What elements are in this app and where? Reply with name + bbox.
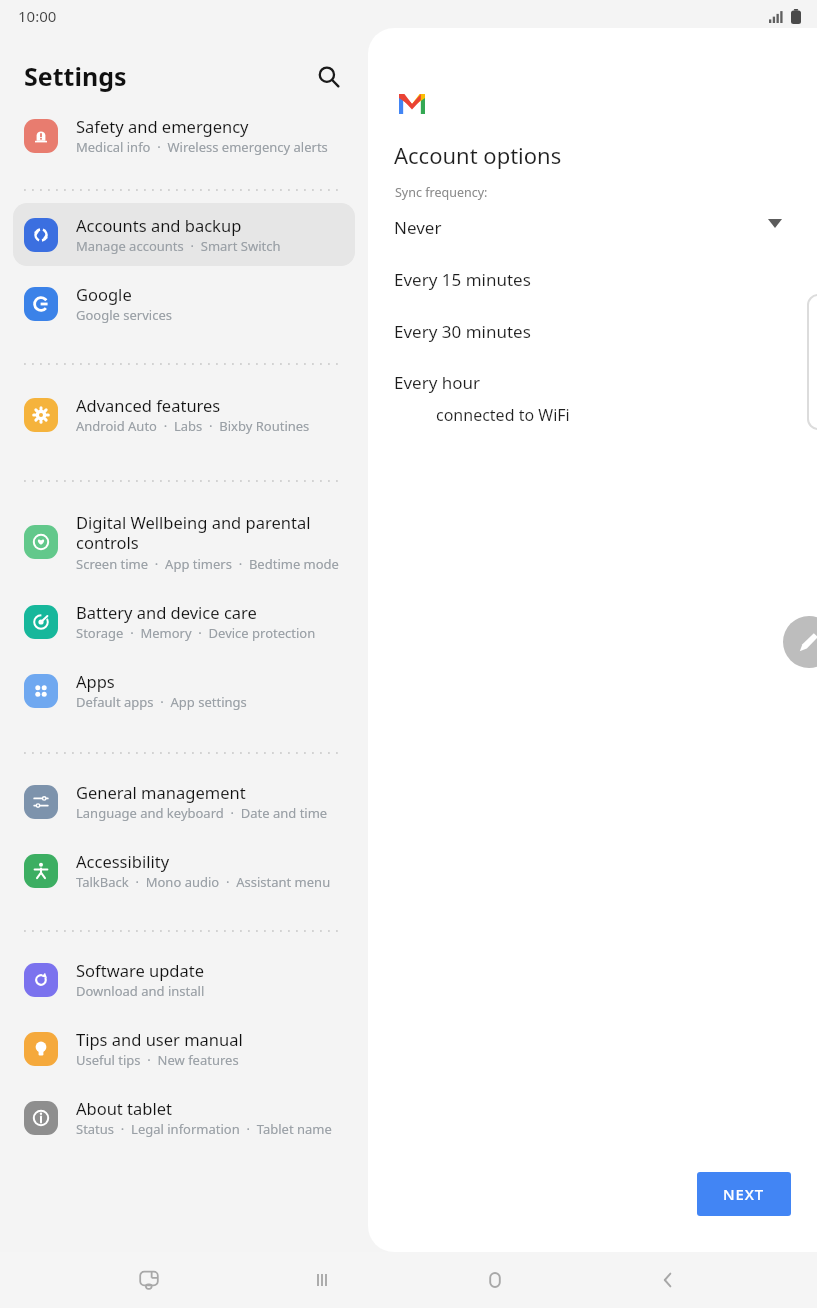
button[interactable]: General management: [13, 770, 355, 833]
staticText: Battery and device care: [76, 601, 257, 623]
button[interactable]: Tips and user manual: [13, 1017, 355, 1080]
staticText: Storage · Memory · Device protection: [76, 624, 316, 642]
button[interactable]: Edit: [783, 616, 817, 668]
staticText: General management: [76, 781, 246, 803]
button[interactable]: Every 30 minutes: [382, 305, 746, 357]
staticText: Every 15 minutes: [394, 268, 531, 291]
button[interactable]: Safety and emergency: [13, 104, 355, 167]
button[interactable]: Search: [306, 54, 350, 98]
button[interactable]: Battery and device care: [13, 590, 355, 653]
staticText: Account options: [394, 140, 562, 170]
staticText: Tips and user manual: [76, 1028, 243, 1050]
button[interactable]: Apps: [13, 659, 355, 722]
staticText: Safety and emergency: [76, 115, 249, 137]
staticText: Apps: [76, 670, 115, 692]
button[interactable]: Advanced features: [13, 383, 355, 446]
button[interactable]: Back: [644, 1256, 692, 1304]
staticText: Screen time · App timers · Bedtime mode: [76, 555, 339, 573]
staticText: Never: [394, 216, 442, 239]
button[interactable]: About tablet: [13, 1086, 355, 1149]
staticText: TalkBack · Mono audio · Assistant menu: [76, 873, 331, 891]
staticText: Accounts and backup: [76, 214, 242, 236]
button[interactable]: Digital Wellbeing and parental controls: [13, 500, 355, 584]
staticText: Default apps · App settings: [76, 693, 247, 711]
button[interactable]: NEXT: [697, 1172, 791, 1216]
staticText: About tablet: [76, 1097, 172, 1119]
staticText: Sync frequency:: [395, 184, 488, 201]
staticText: Language and keyboard · Date and time: [76, 804, 328, 822]
button[interactable]: Home: [471, 1256, 519, 1304]
button[interactable]: Keyboard panel: [125, 1256, 173, 1304]
staticText: Software update: [76, 959, 204, 981]
staticText: Google: [76, 283, 132, 305]
button[interactable]: Google: [13, 272, 355, 335]
button[interactable]: Software update: [13, 948, 355, 1011]
button[interactable]: Never: [382, 201, 746, 253]
staticText: Every 30 minutes: [394, 320, 531, 343]
staticText: Status · Legal information · Tablet name: [76, 1120, 332, 1138]
staticText: Medical info · Wireless emergency alerts: [76, 138, 328, 156]
staticText: 10:00: [18, 6, 57, 26]
button[interactable]: Every 15 minutes: [382, 253, 746, 305]
staticText: Useful tips · New features: [76, 1051, 239, 1069]
staticText: Download and install: [76, 982, 205, 1000]
staticText: Manage accounts · Smart Switch: [76, 237, 281, 255]
button[interactable]: Accessibility: [13, 839, 355, 902]
button[interactable]: Recents: [298, 1256, 346, 1304]
staticText: Google services: [76, 306, 172, 324]
button[interactable]: Every hour: [382, 357, 746, 407]
staticText: Sync Gmail only when connected to WiFi: [436, 380, 601, 426]
staticText: NEXT: [723, 1184, 765, 1204]
staticText: Advanced features: [76, 394, 221, 416]
staticText: Accessibility: [76, 850, 170, 872]
button[interactable]: Accounts and backup: [13, 203, 355, 266]
staticText: Every hour: [394, 371, 481, 394]
staticText: Digital Wellbeing and parental controls: [76, 511, 328, 554]
staticText: Settings: [24, 59, 127, 93]
staticText: Android Auto · Labs · Bixby Routines: [76, 417, 310, 435]
